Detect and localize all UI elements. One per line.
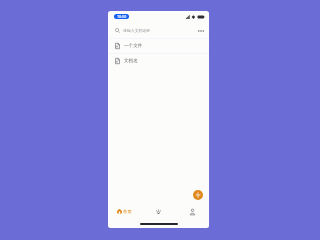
button[interactable]: 首页 xyxy=(108,201,141,222)
button[interactable]: New document xyxy=(193,190,203,200)
staticText: 请输入文档名称 xyxy=(123,28,151,33)
button[interactable]: Profile xyxy=(175,201,209,222)
staticText: 10:50 xyxy=(117,14,127,19)
staticText: 文档名 xyxy=(124,58,138,64)
button[interactable]: More options xyxy=(196,25,205,37)
staticText: 一个文件 xyxy=(124,43,143,49)
button[interactable]: 请输入文档名称 xyxy=(108,23,209,38)
button[interactable]: Templates xyxy=(141,201,175,222)
button[interactable]: 一个文件 xyxy=(108,39,209,53)
staticText: 首页 xyxy=(123,209,132,215)
button[interactable]: 文档名 xyxy=(108,54,209,68)
